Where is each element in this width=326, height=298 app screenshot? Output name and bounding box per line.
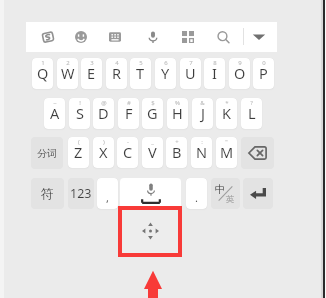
staticText: 123 [70, 185, 92, 202]
button[interactable]: : [191, 137, 212, 168]
button[interactable]: & [192, 98, 213, 129]
staticText: J [201, 103, 205, 123]
staticText: . [195, 190, 198, 205]
button[interactable]: $ [142, 98, 163, 129]
staticText: + [175, 138, 179, 146]
staticText: , [106, 190, 109, 205]
button[interactable]: Sogou [35, 22, 61, 52]
staticText: _ [151, 138, 154, 146]
button[interactable]: 符 [31, 178, 64, 209]
staticText: S [76, 103, 84, 123]
staticText: D [98, 103, 109, 123]
button[interactable]: + [166, 137, 187, 168]
staticText: # [127, 99, 131, 107]
button[interactable]: 1 [32, 58, 53, 89]
staticText: 7 [189, 59, 193, 67]
staticText: Y [161, 63, 170, 83]
button[interactable]: Emoji [68, 22, 94, 52]
staticText: ? [250, 99, 253, 107]
button[interactable]: Space [120, 178, 181, 209]
staticText: " [225, 138, 228, 146]
button[interactable]: 3 [81, 58, 102, 89]
staticText: H [172, 103, 183, 123]
staticText: $ [151, 99, 155, 107]
button[interactable]: , [97, 178, 118, 209]
button[interactable]: _ [142, 137, 163, 168]
staticText: 分词 [37, 147, 57, 160]
staticText: G [147, 103, 158, 123]
button[interactable]: 9 [229, 58, 250, 89]
button[interactable]: 7 [180, 58, 201, 89]
staticText: ( [78, 138, 80, 146]
staticText: 2 [66, 59, 70, 67]
staticText: 1 [41, 59, 45, 67]
button[interactable]: Voice input [140, 22, 166, 52]
button[interactable]: % [167, 98, 188, 129]
button[interactable]: @ [93, 98, 114, 129]
button[interactable]: ? [241, 98, 262, 129]
staticText: P [259, 63, 268, 83]
staticText: W [61, 63, 75, 83]
staticText: 6 [164, 59, 168, 67]
button[interactable]: Backspace [241, 137, 274, 169]
staticText: F [125, 103, 133, 123]
staticText: 中 [215, 183, 226, 196]
button[interactable]: Search [210, 22, 236, 52]
button[interactable]: 8 [204, 58, 225, 89]
staticText: N [196, 142, 208, 162]
button[interactable]: " [216, 137, 237, 168]
button[interactable]: 6 [155, 58, 176, 89]
staticText: Q [37, 63, 49, 83]
staticText: & [200, 99, 205, 107]
button[interactable]: 2 [57, 58, 78, 89]
staticText: T [136, 63, 145, 83]
staticText: V [148, 142, 157, 162]
button[interactable]: ( [68, 137, 89, 168]
button[interactable]: ~ [44, 98, 65, 129]
button[interactable]: Chinese English toggle [211, 178, 240, 209]
staticText: ) [103, 138, 105, 146]
staticText: 符 [41, 186, 54, 202]
staticText: 3 [90, 59, 94, 67]
button[interactable]: More tools [175, 22, 201, 52]
staticText: ! [79, 99, 81, 107]
staticText: 9 [238, 59, 242, 67]
staticText: - [127, 138, 129, 146]
staticText: 4 [115, 59, 119, 67]
staticText: I [212, 63, 217, 83]
staticText: E [87, 63, 96, 83]
staticText: 5 [139, 59, 143, 67]
button[interactable]: Enter [243, 178, 273, 209]
staticText: 8 [213, 59, 217, 67]
staticText: X [99, 142, 108, 162]
button[interactable]: 4 [106, 58, 127, 89]
button[interactable]: 123 [68, 178, 94, 209]
button[interactable]: 5 [130, 58, 151, 89]
button[interactable]: ! [69, 98, 90, 129]
staticText: K [222, 103, 231, 123]
staticText: L [248, 103, 256, 123]
button[interactable]: - [117, 137, 138, 168]
button[interactable]: . [186, 178, 207, 209]
staticText: 0 [262, 59, 266, 67]
staticText: @ [101, 99, 107, 107]
staticText: U [185, 63, 196, 83]
staticText: 英 [226, 194, 235, 205]
button[interactable]: ) [93, 137, 114, 168]
staticText: R [112, 63, 122, 83]
button[interactable]: Keyboard [102, 22, 128, 52]
staticText: B [172, 142, 182, 162]
staticText: Z [74, 142, 83, 162]
button[interactable]: Collapse keyboard [246, 22, 272, 52]
button[interactable]: Move cursor [122, 210, 178, 253]
staticText: M [220, 142, 234, 162]
button[interactable]: # [118, 98, 139, 129]
staticText: O [234, 63, 246, 83]
staticText: : [201, 138, 203, 146]
staticText: % [175, 99, 180, 107]
button[interactable]: * [216, 98, 237, 129]
staticText: ~ [53, 99, 57, 107]
button[interactable]: 0 [253, 58, 274, 89]
staticText: C [123, 142, 133, 162]
button[interactable]: 分词 [31, 137, 63, 169]
